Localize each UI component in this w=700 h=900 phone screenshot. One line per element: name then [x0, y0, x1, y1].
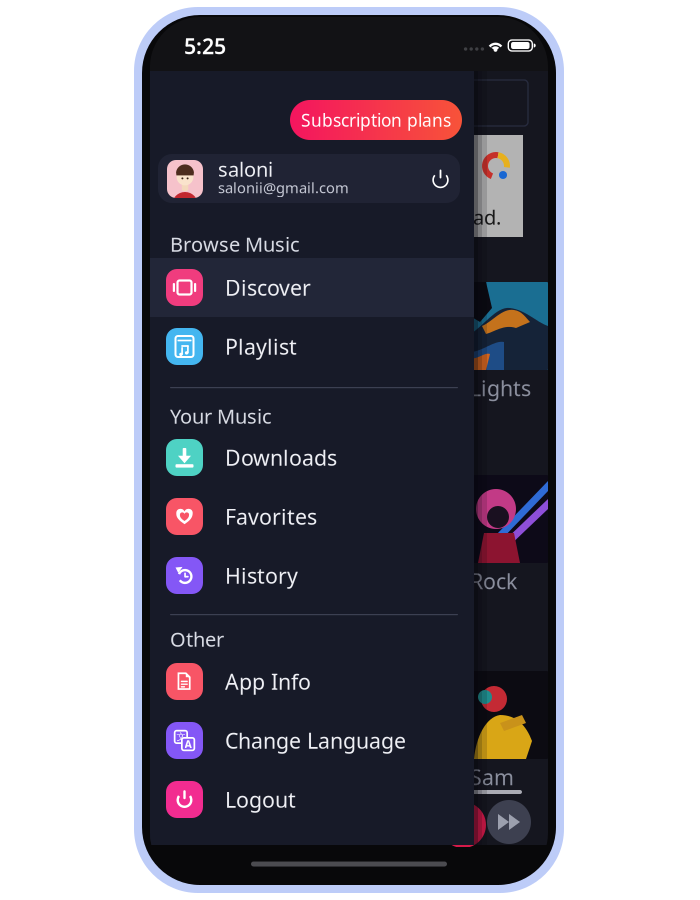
button[interactable]: History — [150, 546, 474, 605]
staticText: Discover — [225, 273, 311, 302]
staticText: Downloads — [225, 443, 337, 472]
staticText: Lights — [470, 374, 531, 402]
staticText: Browse Music — [170, 231, 300, 257]
staticText: salonii@gmail.com — [218, 178, 349, 197]
staticText: 文 — [176, 731, 185, 743]
staticText: Subscription plans — [301, 108, 451, 131]
staticText: History — [225, 561, 298, 590]
staticText: A — [185, 737, 192, 751]
button[interactable]: App Info — [150, 652, 474, 711]
staticText: Rock — [470, 567, 517, 595]
button[interactable]: Subscription plans — [290, 100, 462, 140]
staticText: Other — [170, 626, 224, 652]
staticText: Playlist — [225, 332, 297, 361]
staticText: Your Music — [170, 403, 272, 429]
staticText: ad. — [473, 204, 501, 230]
staticText: 5:25 — [184, 32, 226, 60]
button[interactable]: Playlist — [150, 317, 474, 376]
button[interactable]: 文 — [150, 711, 474, 770]
staticText: Sam — [470, 763, 514, 791]
staticText: saloni — [218, 156, 273, 182]
staticText: Favorites — [225, 502, 317, 531]
button[interactable]: Discover — [150, 258, 474, 317]
button[interactable]: saloni — [158, 154, 460, 203]
staticText: Logout — [225, 785, 296, 814]
staticText: App Info — [225, 667, 311, 696]
staticText: Change Language — [225, 726, 406, 755]
button[interactable]: Favorites — [150, 487, 474, 546]
button[interactable]: Downloads — [150, 428, 474, 487]
button[interactable]: Logout — [150, 770, 474, 829]
